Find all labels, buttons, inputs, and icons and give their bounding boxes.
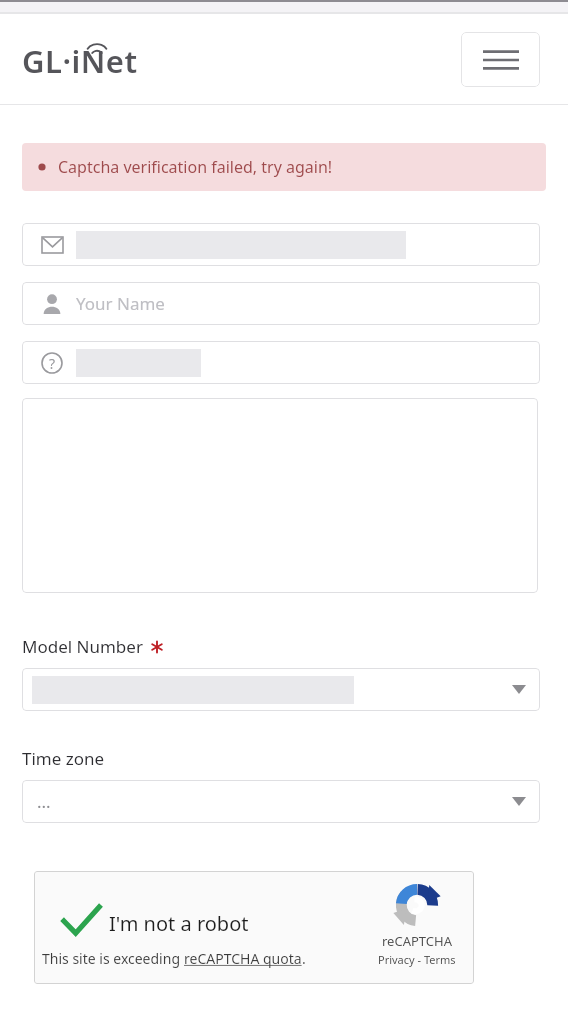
button[interactable] [22, 223, 540, 266]
staticText: Time zone [22, 747, 105, 770]
staticText: Captcha verification failed, try again! [58, 156, 333, 178]
staticText: ... [37, 790, 51, 813]
staticText: reCAPTCHA [382, 932, 452, 950]
button[interactable]: I'm not a robot [34, 871, 474, 984]
staticText: I'm not a robot [109, 910, 249, 937]
button[interactable] [22, 398, 538, 593]
staticText: Privacy - Terms [378, 952, 456, 967]
staticText: This site is exceeding [42, 949, 184, 968]
staticText: Model Number [22, 635, 143, 658]
button[interactable]: GL·iNet [22, 36, 152, 82]
button[interactable]: Dropdown [22, 780, 540, 823]
staticText: ? [49, 354, 56, 373]
staticText: . [302, 949, 306, 968]
button[interactable]: Dropdown [22, 668, 540, 711]
staticText: GL·iNet [22, 40, 138, 82]
button[interactable]: reCAPTCHA quota [184, 949, 302, 968]
button[interactable]: ? [22, 341, 540, 384]
button[interactable]: Menu [461, 32, 540, 87]
button[interactable]: Your Name [22, 282, 540, 325]
staticText: Your Name [76, 292, 165, 315]
